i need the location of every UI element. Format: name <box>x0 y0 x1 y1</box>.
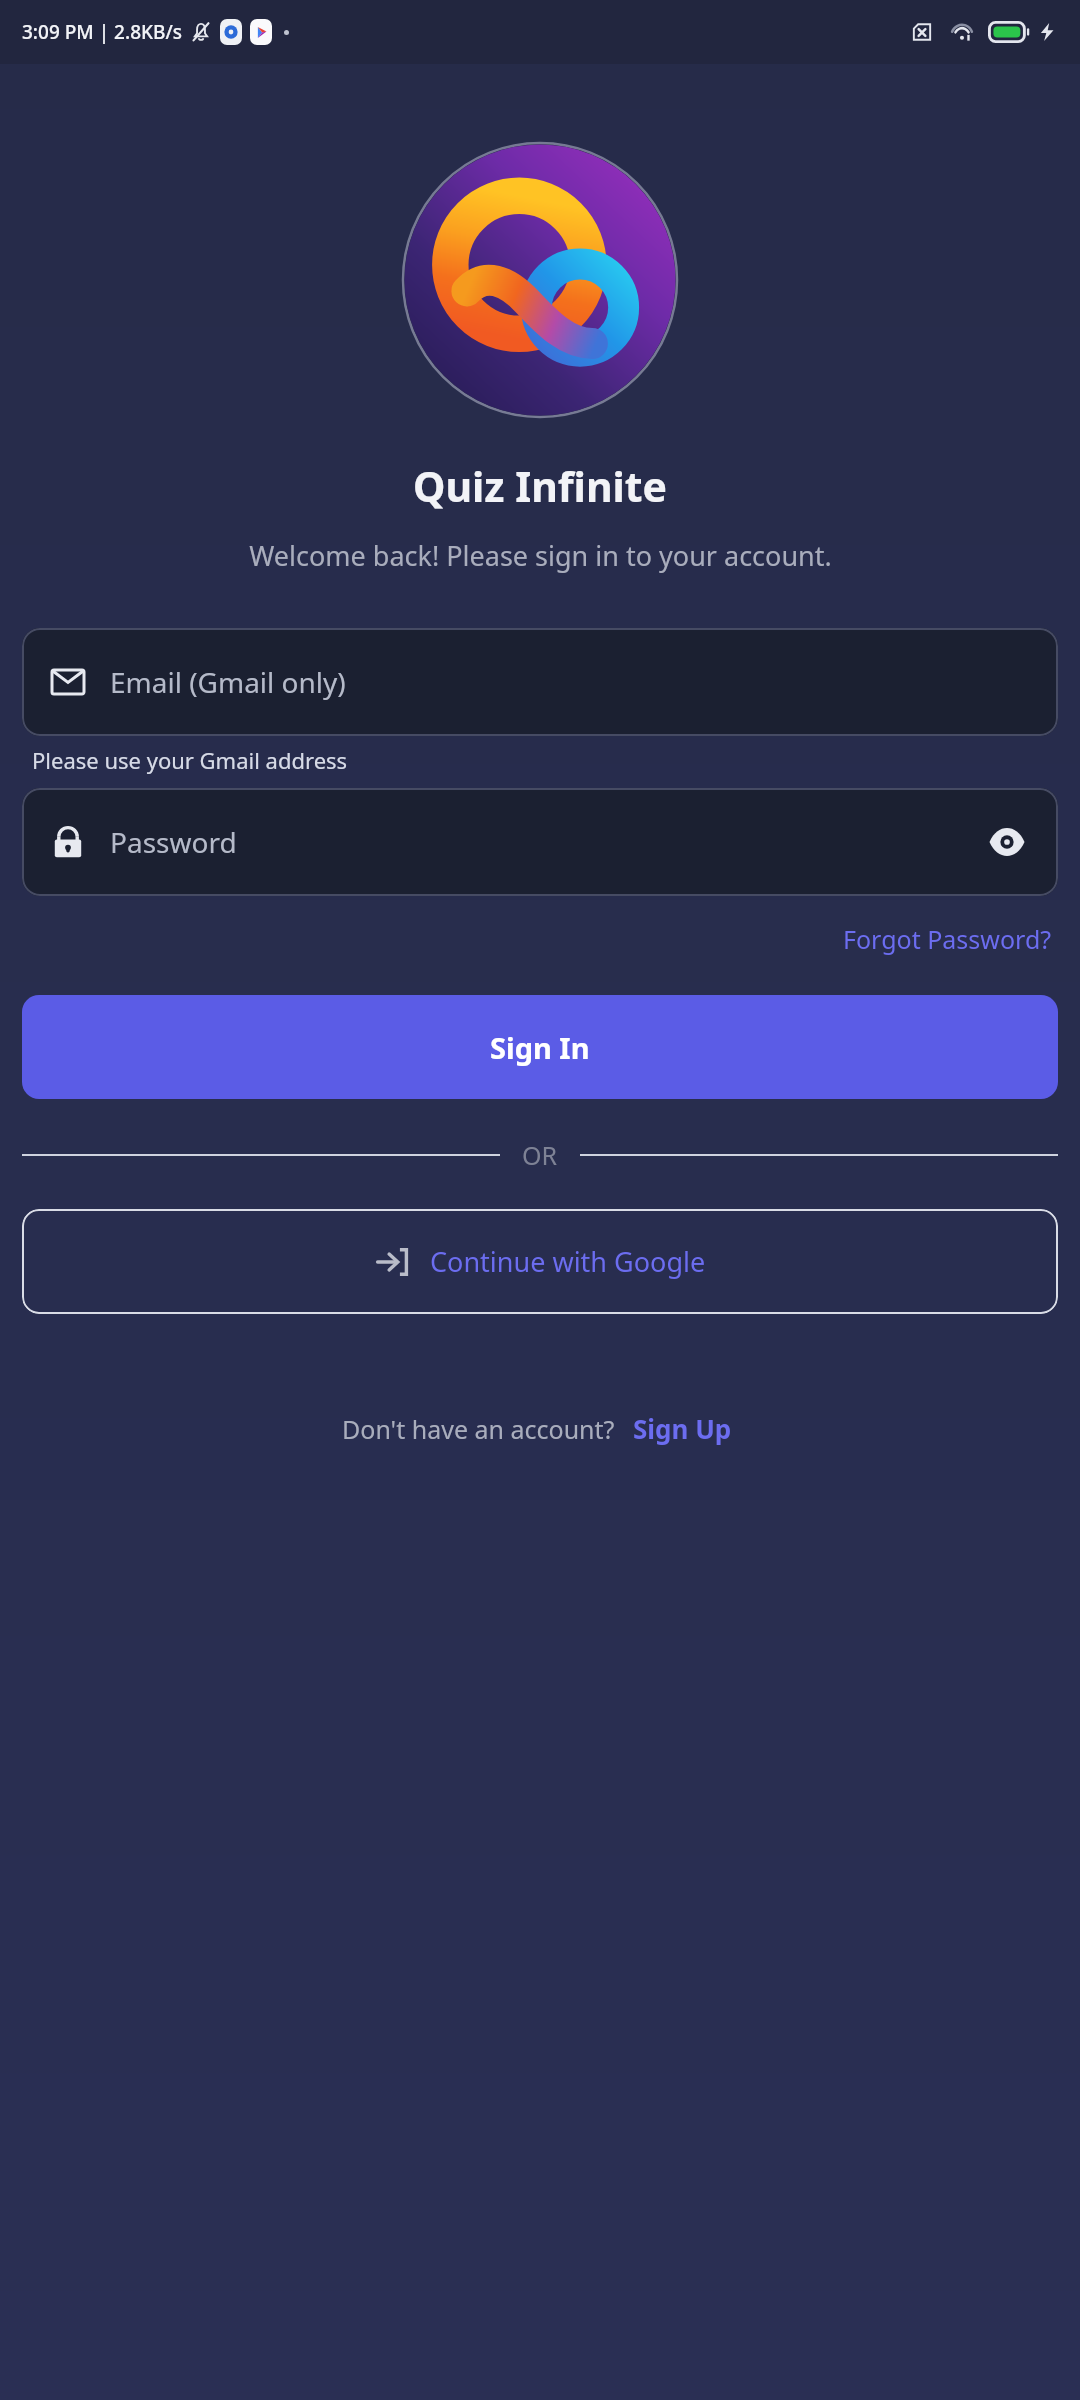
staticText: Continue with Google <box>430 1243 706 1280</box>
button[interactable]: Sign In <box>22 995 1058 1099</box>
button[interactable]: Email (Gmail only) <box>22 628 1058 736</box>
staticText: Email (Gmail only) <box>110 663 1032 701</box>
staticText: 3:09 PM | 2.8KB/s <box>22 19 182 45</box>
staticText: Sign Up <box>633 1411 732 1446</box>
staticText: OR <box>522 1138 558 1172</box>
button[interactable]: Continue with Google <box>22 1209 1058 1314</box>
staticText: Quiz Infinite <box>413 458 668 514</box>
staticText: Welcome back! Please sign in to your acc… <box>249 537 832 574</box>
button[interactable]: Show password <box>982 817 1032 867</box>
button[interactable]: Password <box>22 788 1058 896</box>
staticText: Forgot Password? <box>843 922 1052 956</box>
staticText: Password <box>110 823 982 861</box>
staticText: Sign In <box>490 1028 590 1067</box>
staticText: Please use your Gmail address <box>32 745 348 775</box>
staticText: Don't have an account? <box>342 1412 615 1446</box>
button[interactable]: Forgot Password? <box>837 916 1058 962</box>
button[interactable]: Sign Up <box>627 1407 738 1450</box>
